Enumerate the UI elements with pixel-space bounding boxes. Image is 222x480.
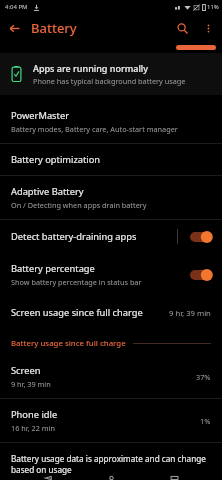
staticText: PowerMaster (11, 109, 69, 122)
button[interactable]: Adaptive Battery (0, 176, 222, 219)
staticText: Adaptive Battery (11, 185, 84, 198)
button[interactable]: Detect battery-draining apps (0, 220, 222, 253)
staticText: 1% (200, 416, 211, 426)
button[interactable]: PowerMaster (0, 100, 222, 143)
button[interactable]: Screen usage since full charge (0, 296, 222, 329)
button[interactable]: Toggle Detect battery-draining apps (190, 230, 214, 244)
staticText: Show battery percentage in status bar (11, 277, 142, 287)
staticText: 9 hr, 39 min (169, 308, 211, 318)
button[interactable]: Apps are running normally (0, 53, 222, 95)
staticText: Phone has typical background battery usa… (33, 76, 186, 86)
button[interactable]: Back (33, 476, 63, 480)
button[interactable]: Battery optimization (0, 144, 222, 175)
button[interactable]: Screen (0, 355, 222, 398)
staticText: 11% (207, 3, 219, 11)
staticText: Screen (11, 364, 41, 377)
staticText: 37% (196, 372, 211, 382)
staticText: Phone idle (11, 408, 58, 421)
staticText: Battery percentage (11, 262, 95, 275)
staticText: Battery usage data is approximate and ca… (11, 453, 210, 476)
staticText: Battery (31, 19, 77, 37)
button[interactable]: Phone idle (0, 399, 222, 442)
button[interactable]: Search (170, 16, 194, 40)
button[interactable]: Back (2, 16, 26, 40)
staticText: Detect battery-draining apps (11, 230, 137, 243)
staticText: Battery optimization (11, 153, 101, 166)
staticText: Battery usage since full charge (11, 338, 126, 349)
staticText: On / Detecting when apps drain battery (11, 200, 147, 210)
staticText: Apps are running normally (33, 62, 149, 74)
button[interactable]: Recents (159, 476, 189, 480)
button[interactable]: Battery percentage (0, 253, 222, 296)
staticText: 16 hr, 22 min (11, 423, 55, 433)
button[interactable]: More options (197, 17, 219, 39)
staticText: Battery modes, Battery care, Auto-start … (11, 124, 178, 134)
staticText: Screen usage since full charge (11, 306, 169, 319)
button[interactable]: Home (96, 476, 126, 480)
staticText: 9 hr, 39 min (11, 379, 51, 389)
staticText: 4:04 PM (5, 3, 28, 11)
button[interactable]: Toggle Battery percentage (190, 268, 214, 282)
